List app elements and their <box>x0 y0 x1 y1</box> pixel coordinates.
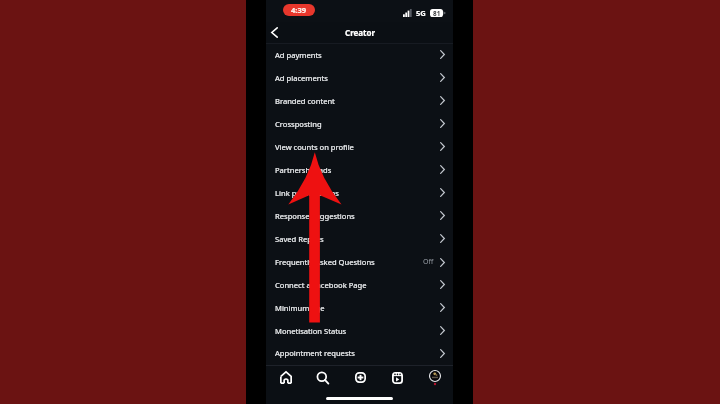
button[interactable]: Home <box>271 366 301 389</box>
staticText: Monetisation Status <box>275 326 347 336</box>
button[interactable]: Link promo shops <box>266 181 453 204</box>
staticText: Crossposting <box>275 119 322 129</box>
staticText: Connect a Facebook Page <box>275 280 367 290</box>
button[interactable]: Crossposting <box>266 112 453 135</box>
staticText: Frequently Asked Questions <box>275 257 375 267</box>
staticText: 5G <box>416 8 426 18</box>
staticText: Ad placements <box>275 73 328 83</box>
button[interactable]: Minimum age <box>266 296 453 319</box>
staticText: Saved Replies <box>275 234 324 244</box>
staticText: Off <box>423 257 434 267</box>
staticText: Branded content <box>275 96 335 106</box>
button[interactable]: Monetisation Status <box>266 319 453 342</box>
button[interactable]: Saved Replies <box>266 227 453 250</box>
button[interactable]: View counts on profile <box>266 135 453 158</box>
staticText: 4:39 <box>291 5 307 15</box>
button[interactable]: Response suggestions <box>266 204 453 227</box>
button[interactable]: Branded content <box>266 89 453 112</box>
button[interactable]: Frequently Asked Questions <box>266 250 453 273</box>
staticText: Minimum age <box>275 303 325 313</box>
staticText: Response suggestions <box>275 211 355 221</box>
staticText: Partnership ads <box>275 165 332 175</box>
staticText: Creator <box>345 27 376 38</box>
button[interactable]: Ad placements <box>266 66 453 89</box>
button[interactable]: Search <box>308 366 338 389</box>
staticText: Link promo shops <box>275 188 339 198</box>
button[interactable]: Back <box>265 23 284 42</box>
staticText: 81 <box>433 9 441 17</box>
button[interactable]: Partnership ads <box>266 158 453 181</box>
button[interactable]: Create <box>345 366 375 389</box>
button[interactable]: Profile <box>420 366 450 389</box>
button[interactable]: Ad payments <box>266 43 453 66</box>
staticText: Appointment requests <box>275 348 355 358</box>
staticText: View counts on profile <box>275 142 354 152</box>
button[interactable]: Appointment requests <box>266 342 453 364</box>
button[interactable]: Connect a Facebook Page <box>266 273 453 296</box>
button[interactable]: Reels <box>382 366 412 389</box>
staticText: Ad payments <box>275 50 322 60</box>
